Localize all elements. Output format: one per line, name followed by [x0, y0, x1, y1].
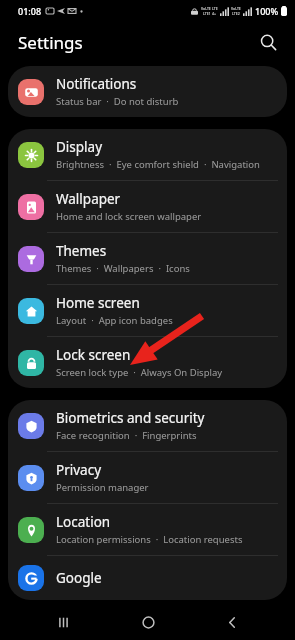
- staticText: Biometrics and security: [56, 409, 205, 427]
- staticText: 4+: [212, 11, 217, 16]
- staticText: VoLTE: [231, 6, 241, 11]
- staticText: Layout · App icon badges: [56, 314, 173, 327]
- staticText: Settings: [18, 31, 83, 54]
- button[interactable]: Display: [8, 129, 287, 180]
- staticText: Location: [56, 513, 111, 531]
- staticText: Face recognition · Fingerprints: [56, 429, 197, 442]
- staticText: Home and lock screen wallpaper: [56, 210, 202, 223]
- staticText: Home screen: [56, 294, 140, 312]
- staticText: Notifications: [56, 75, 137, 93]
- staticText: Brightness · Eye comfort shield · Naviga…: [56, 158, 275, 171]
- staticText: Screen lock type · Always On Display: [56, 366, 223, 379]
- staticText: 01:08: [18, 5, 42, 17]
- button[interactable]: Recents: [41, 604, 85, 640]
- button[interactable]: Back: [210, 604, 254, 640]
- staticText: Location permissions · Location requests: [56, 533, 243, 546]
- button[interactable]: Location: [8, 504, 287, 555]
- staticText: Display: [56, 138, 103, 156]
- button[interactable]: Google: [8, 556, 287, 600]
- staticText: Wallpaper: [56, 190, 121, 208]
- staticText: Themes · Wallpapers · Icons: [56, 262, 190, 275]
- staticText: Privacy: [56, 461, 102, 479]
- staticText: VoLTE: [201, 6, 211, 11]
- button[interactable]: Wallpaper: [8, 181, 287, 232]
- button[interactable]: Biometrics and security: [8, 400, 287, 451]
- staticText: LTE2: [232, 11, 240, 16]
- staticText: LTE: [212, 6, 218, 11]
- staticText: Status bar · Do not disturb: [56, 95, 179, 108]
- button[interactable]: Search: [255, 29, 281, 55]
- staticText: Themes: [56, 242, 107, 260]
- button[interactable]: Lock screen: [8, 337, 287, 388]
- staticText: Permission manager: [56, 481, 149, 494]
- staticText: Google: [56, 569, 102, 587]
- button[interactable]: Privacy: [8, 452, 287, 503]
- button[interactable]: Home screen: [8, 285, 287, 336]
- staticText: LTE1: [203, 11, 211, 16]
- staticText: 100%: [255, 5, 279, 17]
- staticText: Lock screen: [56, 346, 131, 364]
- button[interactable]: Home: [126, 604, 170, 640]
- button[interactable]: Notifications: [8, 66, 287, 117]
- button[interactable]: Themes: [8, 233, 287, 284]
